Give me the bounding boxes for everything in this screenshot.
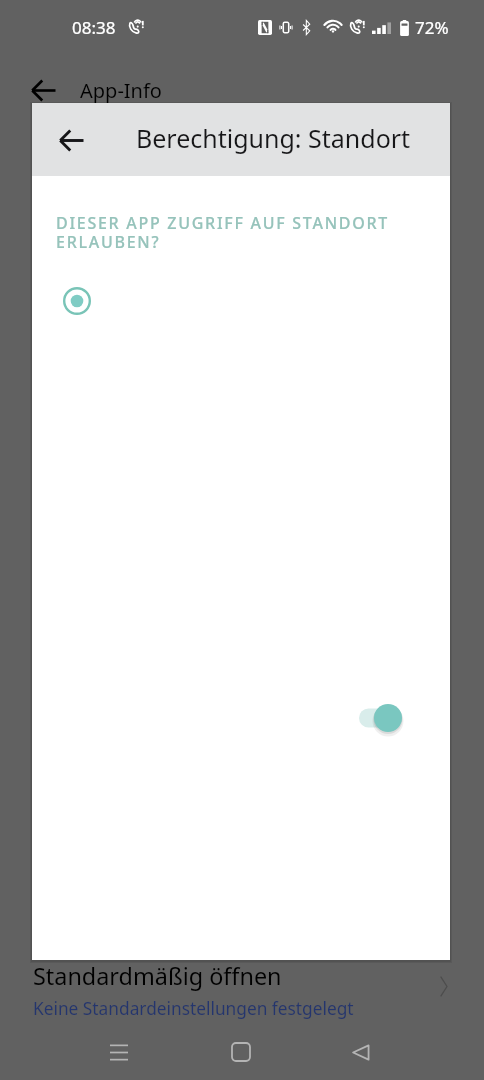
button[interactable]: Standardmäßig öffnen [0, 958, 484, 1024]
staticText: App-Info [80, 77, 162, 104]
button[interactable]: Toggle location permission [351, 696, 411, 740]
staticText: 72% [415, 16, 449, 39]
staticText: Berechtigung: Standort [136, 121, 411, 155]
button[interactable]: Back [22, 69, 64, 111]
button[interactable]: Back [45, 114, 97, 166]
button[interactable]: Recent apps [78, 1022, 159, 1080]
staticText: Standardmäßig öffnen [33, 960, 282, 992]
staticText: 08:38 [72, 16, 116, 39]
staticText: Keine Standardeinstellungen festgelegt [33, 997, 354, 1021]
button[interactable]: Back [320, 1022, 401, 1080]
button[interactable]: Home [200, 1022, 281, 1080]
staticText: DIESER APP ZUGRIFF AUF STANDORT ERLAUBEN… [56, 212, 424, 253]
button[interactable]: Allow location access [58, 282, 96, 320]
